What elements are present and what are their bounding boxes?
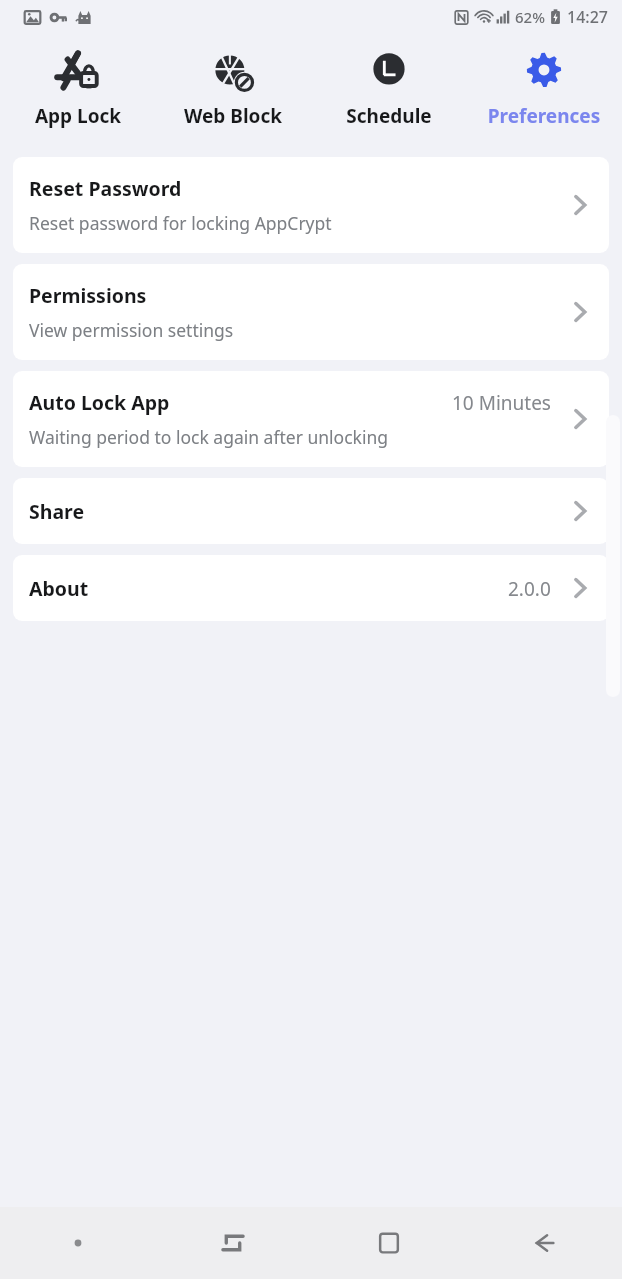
staticText: Share — [29, 498, 85, 525]
staticText: 10 Minutes — [452, 390, 551, 416]
staticText: Schedule — [314, 103, 464, 129]
staticText: View permission settings — [29, 318, 494, 342]
staticText: Permissions — [29, 282, 147, 309]
button[interactable]: Web Block — [158, 34, 308, 129]
staticText: Reset password for locking AppCrypt — [29, 211, 494, 235]
button[interactable]: Schedule — [314, 34, 464, 129]
staticText: 2.0.0 — [508, 576, 551, 602]
button[interactable]: App Lock — [3, 34, 153, 129]
button[interactable]: Auto Lock App — [13, 371, 609, 467]
staticText: 62% — [515, 7, 545, 27]
staticText: About — [29, 575, 89, 602]
button[interactable]: Preferences — [469, 34, 619, 129]
staticText: 14:27 — [567, 6, 608, 28]
button[interactable]: Permissions — [13, 264, 609, 360]
staticText: App Lock — [3, 103, 153, 129]
staticText: Web Block — [158, 103, 308, 129]
button[interactable]: Recent apps — [205, 1215, 261, 1271]
staticText: Auto Lock App — [29, 389, 170, 416]
staticText: Reset Password — [29, 175, 182, 202]
button[interactable]: Back — [516, 1215, 572, 1271]
button[interactable]: Assistant — [50, 1215, 106, 1271]
button[interactable]: Reset Password — [13, 157, 609, 253]
staticText: Preferences — [469, 103, 619, 129]
button[interactable]: About — [13, 555, 609, 621]
staticText: Waiting period to lock again after unloc… — [29, 425, 494, 449]
button[interactable]: Share — [13, 478, 609, 544]
button[interactable]: Home — [361, 1215, 417, 1271]
